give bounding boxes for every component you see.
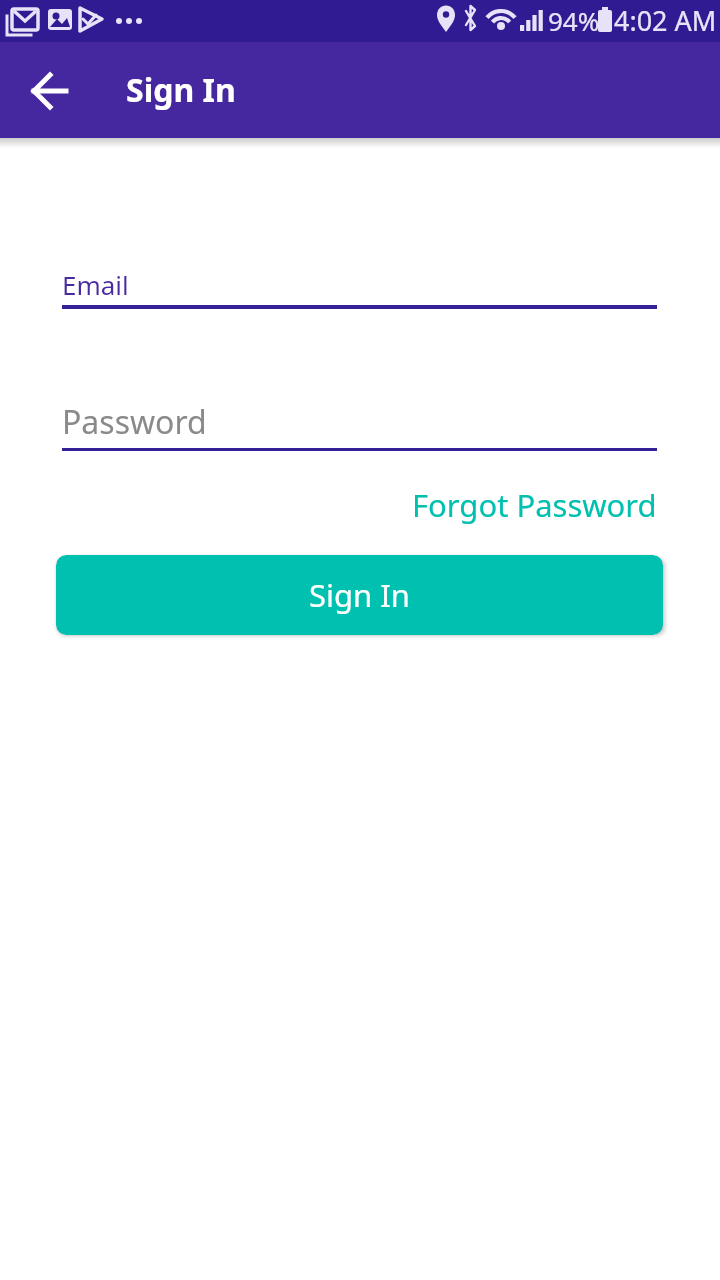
staticText: 4:02 AM xyxy=(614,2,717,39)
staticText: Sign In xyxy=(126,68,236,112)
staticText: Forgot Password xyxy=(412,484,657,526)
staticText: Password xyxy=(62,400,207,444)
staticText: 94% xyxy=(548,3,600,38)
staticText: Email xyxy=(62,267,129,302)
staticText: Sign In xyxy=(309,574,410,616)
